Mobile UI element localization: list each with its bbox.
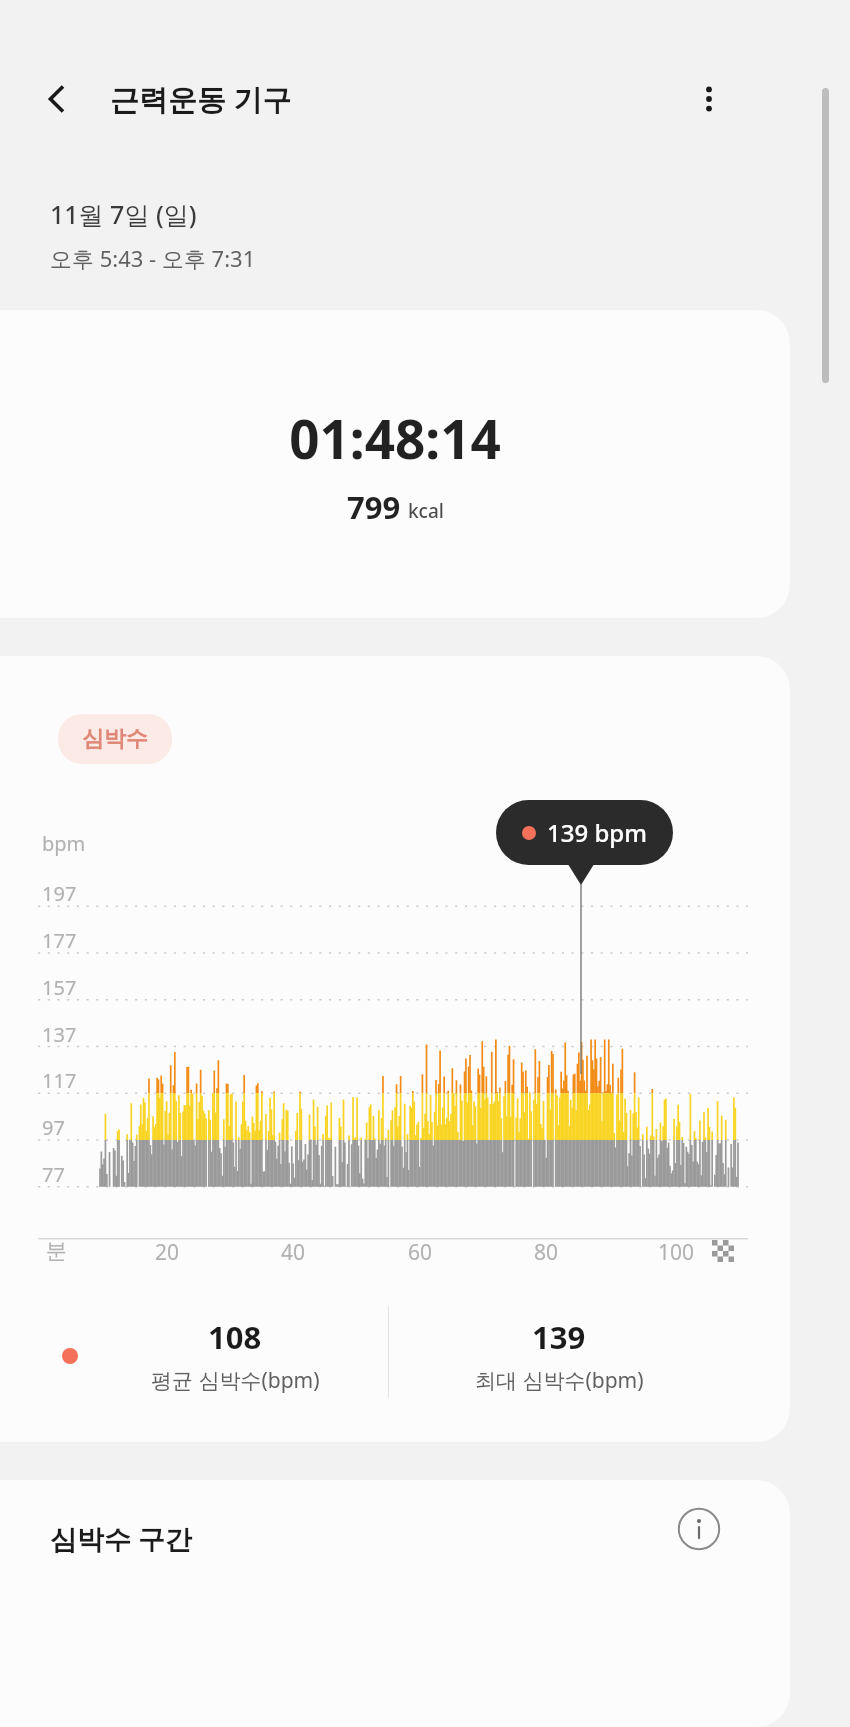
button[interactable]: 심박수 [58,714,172,764]
staticText: 100 [658,1238,695,1267]
button[interactable]: 심박수 구간 [0,1480,790,1727]
staticText: 157 [42,974,77,1001]
staticText: 11월 7일 (일) [50,197,197,231]
staticText: 최대 심박수(bpm) [475,1366,644,1395]
staticText: 분 [46,1238,67,1264]
staticText: 평균 심박수(bpm) [151,1366,320,1395]
staticText: bpm [42,830,86,857]
staticText: 177 [42,927,77,954]
staticText: 97 [42,1114,65,1141]
staticText: 20 [155,1238,180,1267]
staticText: 근력운동 기구 [110,79,292,119]
button[interactable]: Info [668,1498,730,1560]
button[interactable]: More options [678,68,740,130]
staticText: 60 [408,1238,433,1267]
staticText: 심박수 [82,725,148,753]
staticText: 799 [347,486,401,528]
button[interactable]: 139 bpm [496,800,673,865]
staticText: 심박수 구간 [50,1520,193,1557]
staticText: 40 [281,1238,306,1267]
staticText: 80 [534,1238,559,1267]
button[interactable]: 01:48:14 [0,310,790,618]
staticText: 01:48:14 [0,402,790,474]
staticText: 137 [42,1021,77,1048]
staticText: 139 [532,1316,586,1358]
staticText: 오후 5:43 - 오후 7:31 [50,243,256,273]
staticText: 108 [208,1316,262,1358]
staticText: 117 [42,1067,77,1094]
staticText: 77 [42,1161,65,1188]
staticText: kcal [408,498,444,524]
button[interactable]: Back [26,68,88,130]
staticText: 197 [42,880,77,907]
staticText: 139 bpm [547,816,647,849]
